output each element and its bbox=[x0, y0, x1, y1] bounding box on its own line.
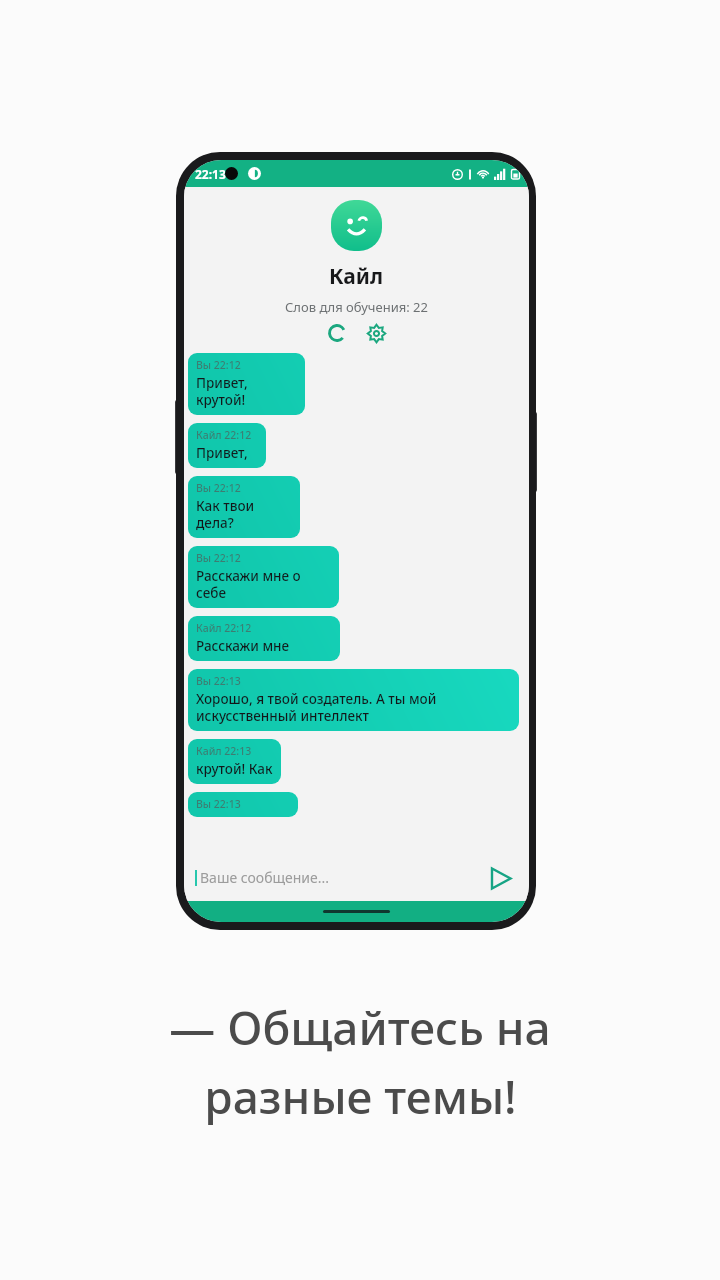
staticText: Вы 22:13 bbox=[196, 797, 241, 811]
staticText: Как твои дела? bbox=[196, 497, 292, 532]
staticText: Ваше сообщение... bbox=[200, 868, 330, 887]
button[interactable]: Вы 22:13 bbox=[188, 792, 298, 817]
staticText: — Общайтесь на bbox=[169, 996, 551, 1059]
button[interactable]: Настройки bbox=[363, 320, 389, 346]
staticText: Вы 22:12 bbox=[196, 551, 241, 565]
button[interactable]: Кайл 22:12 bbox=[188, 423, 266, 468]
staticText: Расскажи мне bbox=[196, 637, 290, 655]
staticText: Расскажи мне о себе bbox=[196, 567, 331, 602]
button[interactable]: Вы 22:13 bbox=[188, 669, 519, 731]
staticText: крутой! Как bbox=[196, 760, 273, 778]
staticText: Кайл bbox=[329, 262, 384, 291]
button[interactable]: Ваше сообщение... bbox=[195, 854, 482, 901]
staticText: Привет, крутой! bbox=[196, 374, 297, 409]
staticText: Слов для обучения: 22 bbox=[285, 298, 428, 316]
button[interactable]: Вы 22:12 bbox=[188, 546, 339, 608]
staticText: Привет, bbox=[196, 444, 248, 462]
button[interactable]: Вы 22:12 bbox=[188, 353, 305, 415]
staticText: Вы 22:13 bbox=[196, 674, 241, 688]
staticText: разные темы! bbox=[204, 1065, 517, 1128]
staticText: Хорошо, я твой создатель. А ты мой искус… bbox=[196, 690, 437, 725]
button[interactable]: Отправить bbox=[482, 860, 518, 896]
button[interactable]: Кайл 22:13 bbox=[188, 739, 281, 784]
staticText: Кайл 22:12 bbox=[196, 621, 252, 635]
staticText: 22:13 bbox=[195, 166, 226, 182]
button[interactable]: Обновить bbox=[324, 320, 350, 346]
staticText: Вы 22:12 bbox=[196, 481, 241, 495]
staticText: Вы 22:12 bbox=[196, 358, 241, 372]
button[interactable]: Вы 22:12 bbox=[188, 476, 300, 538]
staticText: Кайл 22:13 bbox=[196, 744, 252, 758]
button[interactable]: Кайл 22:12 bbox=[188, 616, 340, 661]
button[interactable]: Аватар Кайл bbox=[331, 200, 382, 251]
staticText: Кайл 22:12 bbox=[196, 428, 252, 442]
